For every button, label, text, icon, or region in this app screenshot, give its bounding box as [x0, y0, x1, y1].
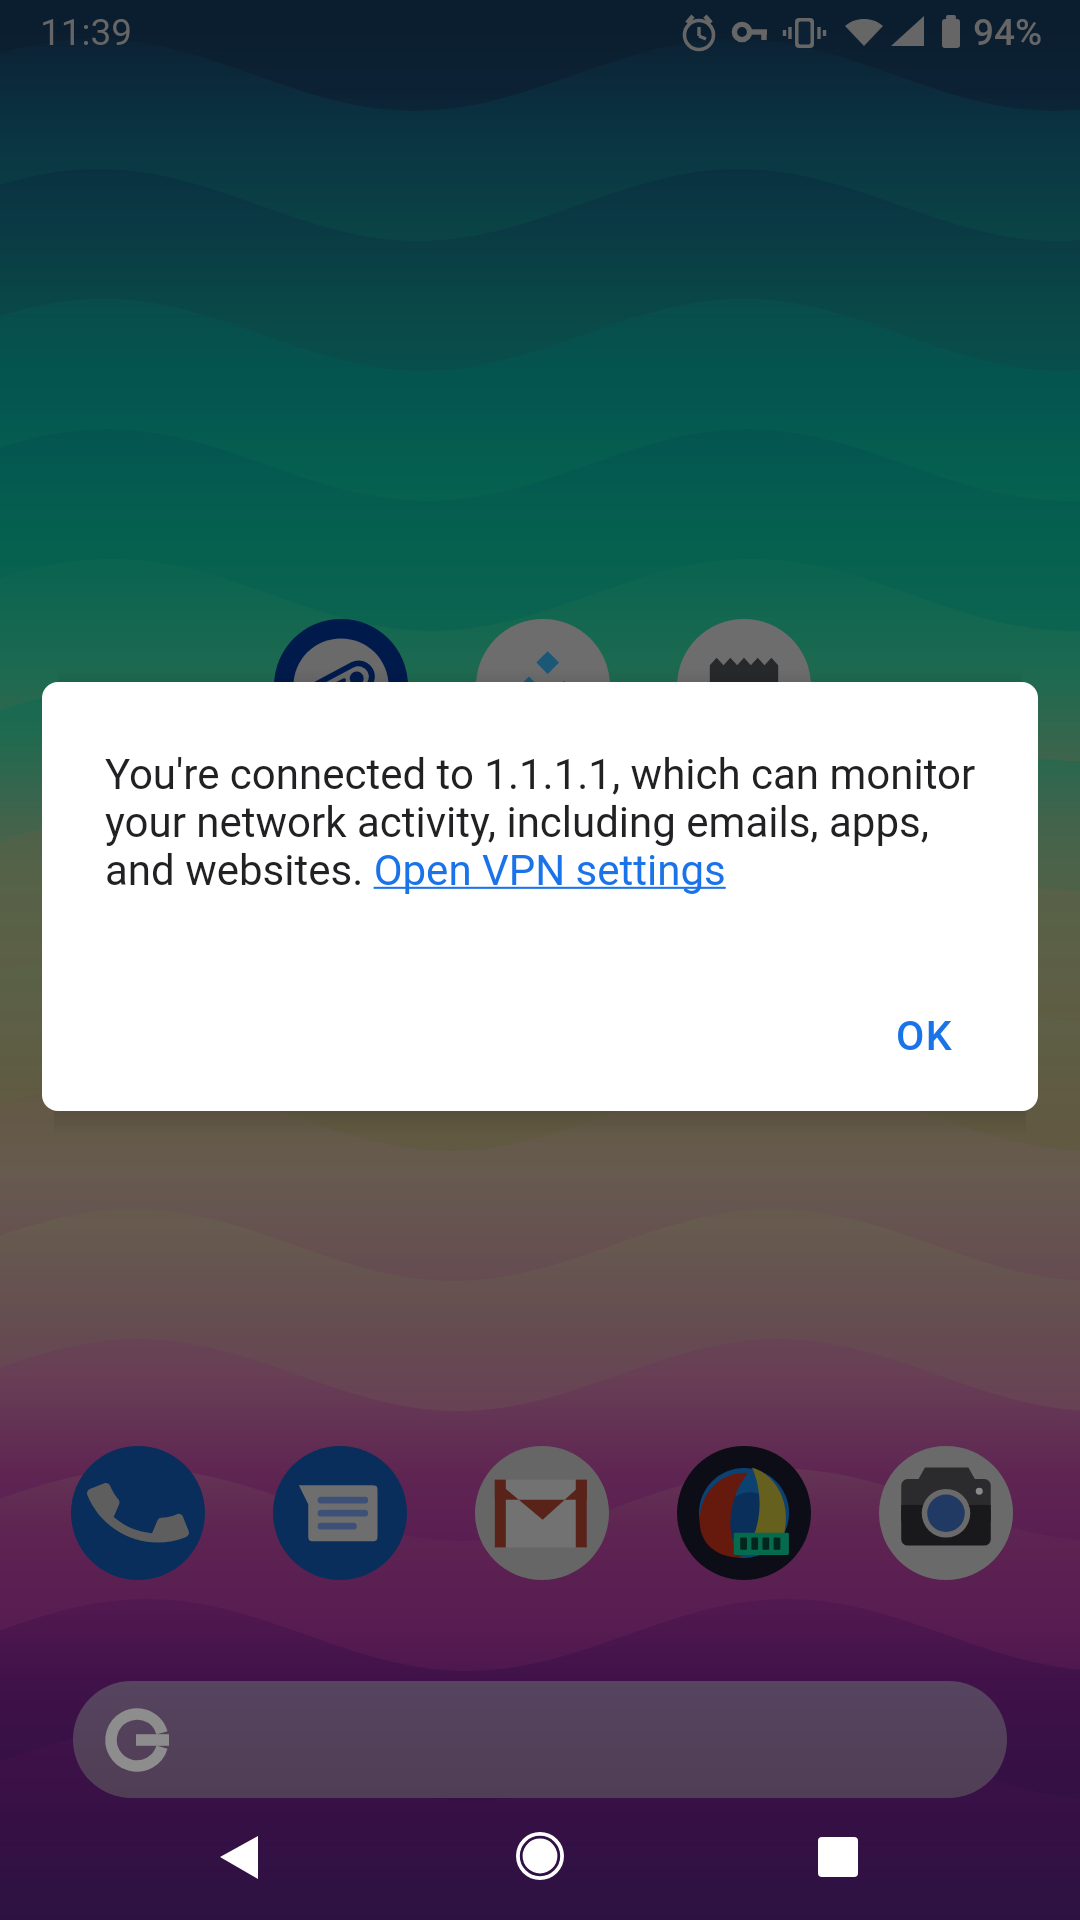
- button[interactable]: Messages: [273, 1446, 407, 1580]
- button[interactable]: Back: [179, 1796, 299, 1916]
- button[interactable]: Firefox Beta: [677, 1446, 811, 1580]
- staticText: You're connected to 1.1.1.1, which can m…: [105, 750, 1010, 895]
- button[interactable]: App: [677, 619, 811, 753]
- button[interactable]: Home: [480, 1796, 600, 1916]
- button[interactable]: App: [476, 619, 610, 753]
- staticText: 94%: [973, 11, 1043, 54]
- button[interactable]: App: [274, 619, 408, 753]
- button[interactable]: OK: [846, 986, 1002, 1086]
- button[interactable]: Open VPN settings: [373, 848, 729, 898]
- button[interactable]: Recent apps: [778, 1796, 898, 1916]
- staticText: OK: [896, 1012, 953, 1060]
- button[interactable]: Search: [73, 1681, 1007, 1798]
- button[interactable]: Camera: [879, 1446, 1013, 1580]
- button[interactable]: Gmail: [475, 1446, 609, 1580]
- button[interactable]: Phone: [71, 1446, 205, 1580]
- staticText: 11:39: [40, 11, 133, 54]
